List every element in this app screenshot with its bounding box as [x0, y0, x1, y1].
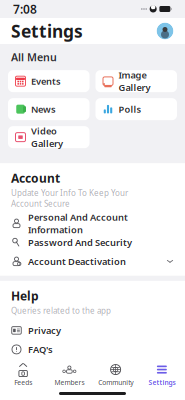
button[interactable]: Password And Security: [0, 233, 185, 252]
button[interactable]: About Us: [0, 359, 185, 378]
staticText: Events: [31, 75, 61, 87]
button[interactable]: Account Deactivation: [0, 252, 185, 271]
staticText: Image Gallery: [118, 69, 150, 94]
button[interactable]: Privacy: [0, 321, 185, 340]
staticText: Help: [11, 288, 39, 304]
staticText: News: [31, 103, 56, 115]
staticText: Settings: [11, 19, 83, 42]
staticText: Update Your Info To Keep Your Account Se…: [11, 188, 128, 209]
staticText: Settings: [148, 378, 175, 387]
button[interactable]: Polls: [95, 98, 177, 120]
button[interactable]: Members: [46, 363, 92, 387]
staticText: Queries related to the app: [11, 305, 111, 316]
button[interactable]: Profile: [156, 22, 174, 40]
button[interactable]: Settings: [139, 363, 185, 387]
button[interactable]: FAQ's: [0, 340, 185, 359]
staticText: Community: [98, 378, 133, 387]
staticText: 7:08: [13, 1, 37, 17]
button[interactable]: Image Gallery: [95, 70, 177, 92]
staticText: Log Out: [28, 393, 71, 400]
staticText: Account: [11, 170, 60, 186]
staticText: Feeds: [14, 378, 32, 387]
staticText: Members: [54, 378, 84, 387]
button[interactable]: Feeds: [0, 363, 46, 387]
staticText: About Us: [13, 362, 55, 375]
staticText: All Menu: [11, 50, 57, 64]
staticText: Privacy: [28, 324, 61, 337]
button[interactable]: Personal And Account Information: [0, 214, 185, 233]
button[interactable]: Log Out: [0, 391, 185, 400]
staticText: Polls: [118, 103, 141, 115]
button[interactable]: Events: [8, 70, 89, 92]
button[interactable]: News: [8, 98, 89, 120]
staticText: Video Gallery: [31, 125, 63, 150]
button[interactable]: Community: [92, 363, 139, 387]
staticText: FAQ's: [28, 343, 53, 356]
staticText: Account Deactivation: [28, 255, 126, 268]
staticText: Personal And Account Information: [28, 211, 128, 236]
button[interactable]: Video Gallery: [8, 126, 89, 148]
staticText: Password And Security: [28, 236, 132, 249]
